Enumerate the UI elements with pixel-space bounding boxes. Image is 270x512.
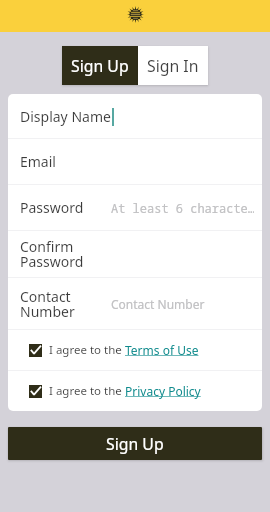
button[interactable]: Sign Up [8, 427, 262, 460]
staticText: Email [20, 152, 56, 171]
button[interactable]: Confirm Password [8, 231, 262, 277]
button[interactable]: Email [8, 139, 262, 184]
button[interactable]: Display Name [8, 94, 262, 138]
staticText: At least 6 characte… [111, 200, 254, 216]
button[interactable]: Password [8, 185, 262, 230]
staticText: Display Name [20, 107, 111, 126]
button[interactable]: Sign Up [62, 46, 138, 85]
staticText: Sign Up [71, 55, 129, 77]
button[interactable]: Sign In [138, 46, 208, 85]
button[interactable]: Contact Number [8, 278, 262, 329]
staticText: Password [20, 198, 84, 217]
staticText: I agree to the [49, 342, 125, 358]
staticText: Sign In [147, 55, 199, 77]
staticText: Contact Number [111, 296, 205, 312]
other: App logo [127, 6, 144, 23]
staticText: Privacy Policy [125, 383, 201, 399]
staticText: Confirm Password [20, 237, 84, 271]
staticText: Contact Number [20, 287, 75, 321]
staticText: Sign Up [106, 433, 164, 455]
button[interactable]: I agree to the [8, 371, 262, 411]
button[interactable]: I agree to the [8, 330, 262, 370]
staticText: I agree to the [49, 383, 125, 399]
staticText: Terms of Use [125, 342, 199, 358]
